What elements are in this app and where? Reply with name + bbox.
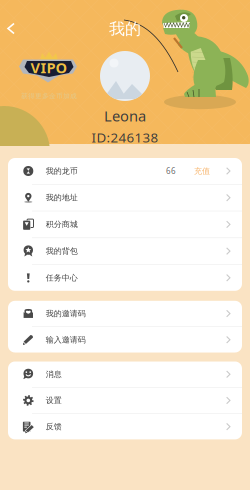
staticText: 我的背包	[46, 246, 78, 256]
button[interactable]: 输入邀请码	[8, 327, 242, 352]
button[interactable]: Back	[0, 15, 23, 42]
staticText: 充值	[194, 166, 210, 176]
staticText: 输入邀请码	[46, 335, 86, 345]
staticText: VIPO	[30, 58, 67, 77]
button[interactable]: 我的背包	[8, 238, 242, 264]
button[interactable]: 我的邀请码	[8, 301, 242, 326]
staticText: 我的邀请码	[46, 309, 86, 318]
button[interactable]: 我的地址	[8, 185, 242, 211]
staticText: 我的地址	[46, 193, 78, 203]
staticText: 积分商城	[46, 219, 78, 229]
button[interactable]: 设置	[8, 388, 242, 413]
button[interactable]: 任务中心	[8, 265, 242, 291]
staticText: Leona	[104, 106, 146, 125]
staticText: 消息	[46, 369, 62, 379]
button[interactable]: 反馈	[8, 414, 242, 439]
button[interactable]: 我的龙币	[8, 158, 242, 184]
staticText: 66	[166, 166, 176, 176]
staticText: 反馈	[46, 422, 62, 431]
button[interactable]: 消息	[8, 361, 242, 387]
staticText: 任务中心	[46, 273, 78, 283]
staticText: ID:246138	[91, 128, 158, 146]
button[interactable]: 积分商城	[8, 211, 242, 237]
staticText: 设置	[46, 395, 62, 405]
staticText: 获得更多金币加成	[21, 92, 77, 100]
staticText: 我的龙币	[46, 166, 78, 176]
staticText: 我的	[109, 19, 141, 39]
